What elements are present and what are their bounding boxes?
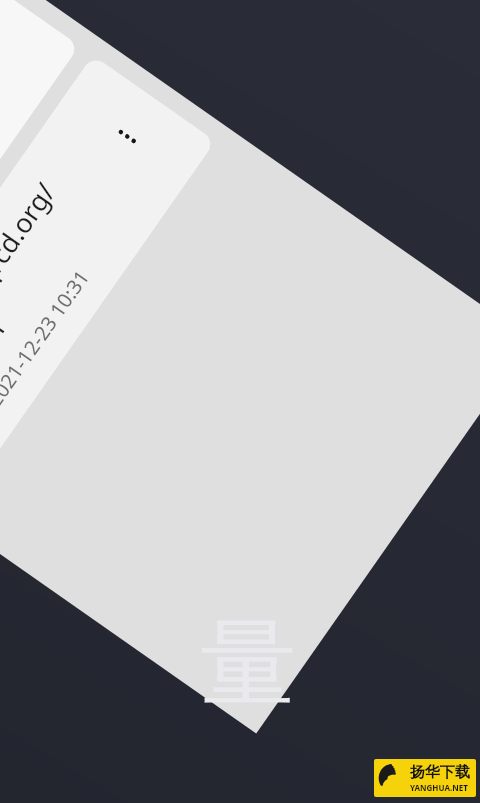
button[interactable]: 扬华下载 [374,759,476,797]
staticText: 量 [200,604,296,725]
button[interactable]: More options [90,99,165,174]
staticText: https://qrcd.org/3BuH [0,127,127,391]
button[interactable]: HTTP [0,0,80,409]
staticText: YANGHUA.NET [410,782,468,793]
staticText: 扬华下载 [410,763,470,782]
staticText: 2021-12-23 10:31 [0,264,95,412]
button[interactable]: HTTP [0,55,216,505]
